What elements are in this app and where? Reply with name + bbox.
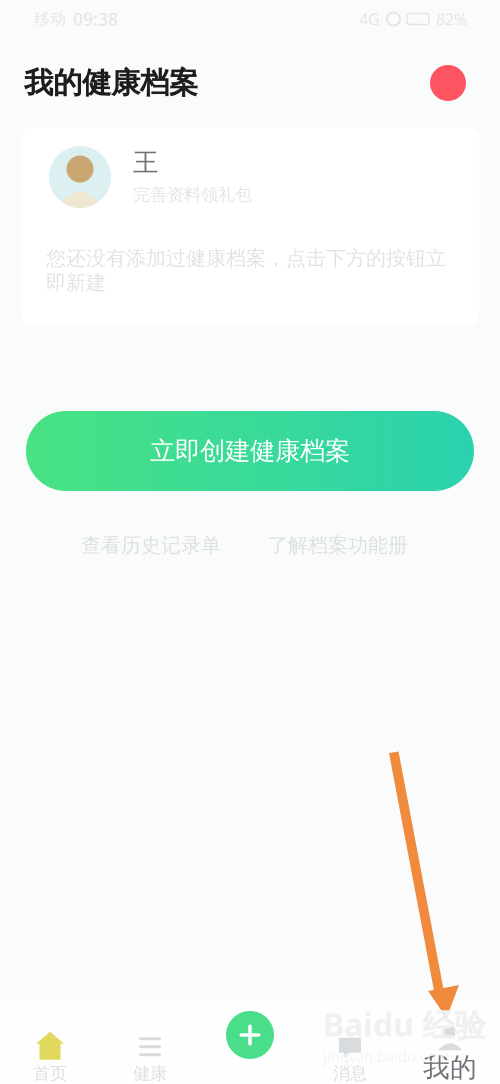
staticText: 09:38 bbox=[73, 7, 118, 30]
staticText: 立即创建健康档案 bbox=[150, 435, 350, 466]
staticText: 消息 bbox=[333, 1063, 367, 1084]
staticText: 完善资料领礼包 bbox=[133, 184, 252, 205]
staticText: 首页 bbox=[33, 1063, 67, 1084]
staticText: 我的 bbox=[423, 1051, 477, 1084]
staticText: 健康 bbox=[133, 1063, 167, 1084]
staticText: jingyan.baidu.com bbox=[323, 1046, 450, 1066]
staticText: 4G bbox=[359, 8, 380, 30]
staticText: 移动 bbox=[34, 9, 66, 29]
button[interactable]: 健康 bbox=[100, 1010, 200, 1084]
button[interactable]: 消息 bbox=[300, 1010, 400, 1084]
staticText: 了解档案功能册 bbox=[268, 533, 408, 558]
button[interactable]: 消息通知 bbox=[430, 65, 466, 101]
staticText: 查看历史记录单 bbox=[81, 533, 221, 558]
staticText: Baidu 经验 bbox=[323, 1003, 486, 1046]
button[interactable]: 查看历史记录单 bbox=[81, 533, 221, 558]
staticText: 我的健康档案 bbox=[24, 65, 198, 101]
button[interactable]: 首页 bbox=[0, 1010, 100, 1084]
button[interactable]: 了解档案功能册 bbox=[268, 533, 408, 558]
button[interactable]: 立即创建健康档案 bbox=[26, 411, 474, 491]
staticText: 82% bbox=[436, 8, 467, 30]
staticText: 您还没有添加过健康档案，点击下方的按钮立即新建 bbox=[46, 246, 446, 295]
button[interactable]: 新建 bbox=[200, 1010, 300, 1084]
button[interactable]: 我的 bbox=[400, 1010, 500, 1084]
staticText: 王 bbox=[133, 147, 158, 178]
